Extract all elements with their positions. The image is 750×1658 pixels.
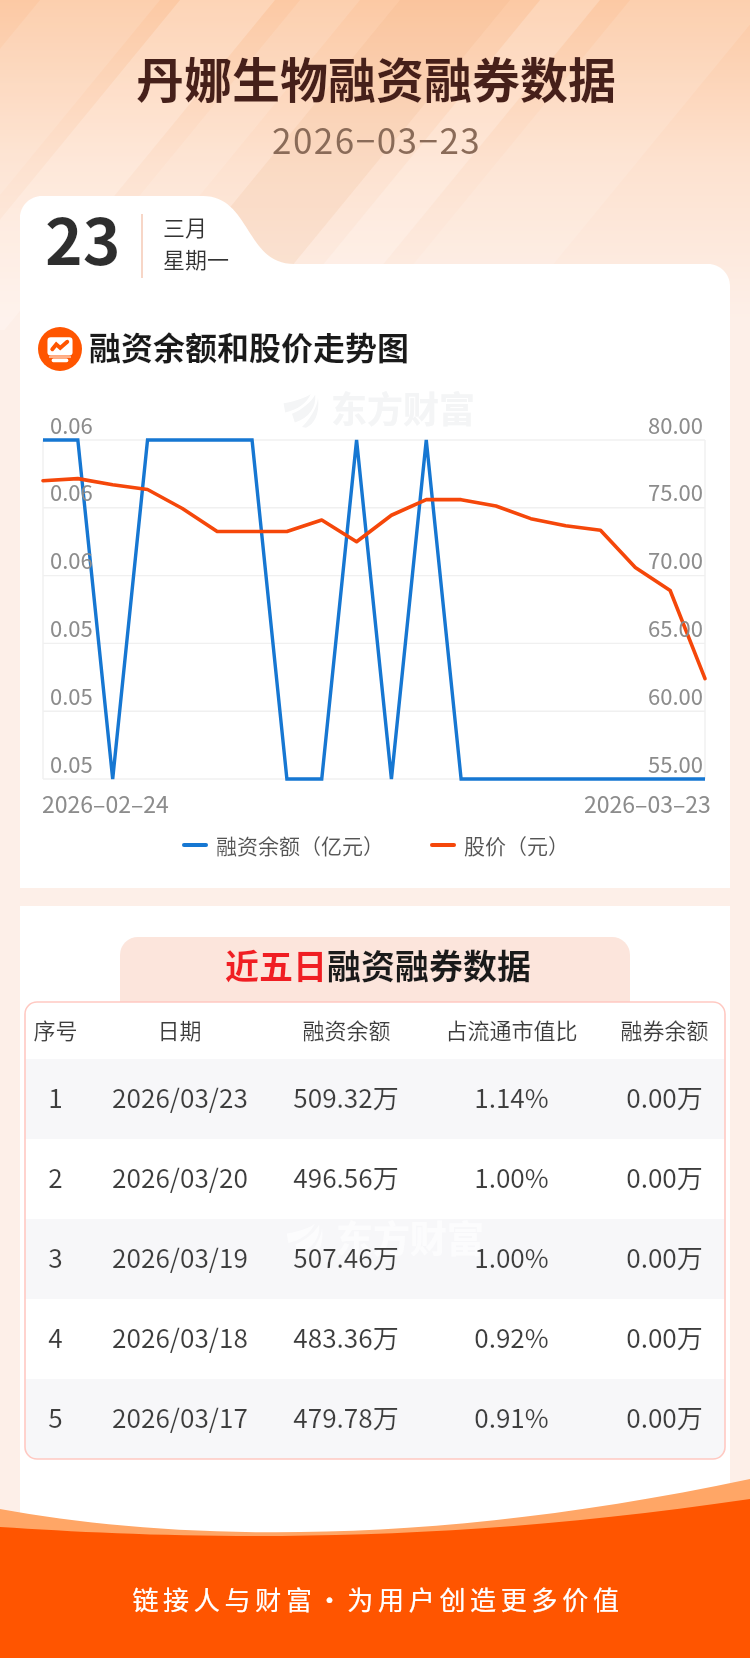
button[interactable] (25, 1219, 725, 1299)
staticText: 1.00% (474, 1158, 549, 1196)
staticText: 星期一 (163, 242, 230, 274)
staticText: 1 (48, 1078, 63, 1116)
staticText: 0.00万 (626, 1078, 703, 1116)
staticText: 序号 (33, 1013, 78, 1045)
staticText: 509.32万 (293, 1078, 399, 1116)
staticText: 2026‒02‒24 (42, 786, 169, 819)
staticText: 0.92% (474, 1318, 549, 1356)
button[interactable] (25, 1059, 725, 1139)
staticText: 0.06 (50, 475, 93, 507)
staticText: 2026/03/20 (112, 1158, 248, 1196)
staticText: 60.00 (648, 679, 703, 711)
staticText: 东方财富 (331, 381, 476, 433)
staticText: 东方财富 (336, 1210, 484, 1264)
staticText: 2026/03/19 (112, 1238, 248, 1276)
staticText: 5 (48, 1398, 63, 1436)
staticText: 0.06 (50, 543, 93, 575)
staticText: 496.56万 (293, 1158, 399, 1196)
staticText: 0.00万 (626, 1158, 703, 1196)
staticText: 0.05 (50, 679, 93, 711)
staticText: 479.78万 (293, 1398, 399, 1436)
staticText: 0.00万 (626, 1398, 703, 1436)
button[interactable]: 走势图 (38, 327, 82, 371)
staticText: 链接人与财富·为用户创造更多价值 (132, 1580, 624, 1618)
staticText: 0.05 (50, 747, 93, 779)
button[interactable] (25, 1139, 725, 1219)
staticText: 融资融券数据 (327, 940, 531, 989)
staticText: 2 (48, 1158, 63, 1196)
staticText: 70.00 (648, 543, 703, 575)
staticText: 日期 (157, 1013, 202, 1045)
staticText: 0.00万 (626, 1238, 703, 1276)
staticText: 融资余额 (302, 1013, 391, 1045)
staticText: 0.91% (474, 1398, 549, 1436)
button[interactable] (25, 1299, 725, 1379)
staticText: 2026/03/17 (112, 1398, 248, 1436)
staticText: 近五日 (225, 940, 327, 989)
staticText: 2026/03/23 (112, 1078, 248, 1116)
staticText: 2026‒03‒23 (584, 786, 711, 819)
staticText: 23 (45, 191, 121, 284)
staticText: 65.00 (648, 611, 703, 643)
staticText: 股价（元） (464, 830, 569, 860)
staticText: 1.00% (474, 1238, 549, 1276)
staticText: 55.00 (648, 747, 703, 779)
staticText: 1.14% (474, 1078, 549, 1116)
staticText: 占流通市值比 (445, 1013, 578, 1045)
staticText: 80.00 (648, 408, 703, 440)
staticText: 483.36万 (293, 1318, 399, 1356)
staticText: 融资余额（亿元） (216, 830, 384, 860)
staticText: 75.00 (648, 475, 703, 507)
button[interactable] (25, 1379, 725, 1459)
staticText: 0.00万 (626, 1318, 703, 1356)
staticText: 3 (48, 1238, 63, 1276)
staticText: 2026−03−23 (272, 113, 482, 164)
staticText: 507.46万 (293, 1238, 399, 1276)
staticText: 融券余额 (620, 1013, 709, 1045)
staticText: 4 (48, 1318, 63, 1356)
staticText: 丹娜生物融资融券数据 (136, 42, 617, 112)
staticText: 融资余额和股价走势图 (89, 323, 410, 369)
staticText: 三月 (163, 210, 208, 242)
staticText: 2026/03/18 (112, 1318, 248, 1356)
staticText: 0.06 (50, 408, 93, 440)
staticText: 0.05 (50, 611, 93, 643)
